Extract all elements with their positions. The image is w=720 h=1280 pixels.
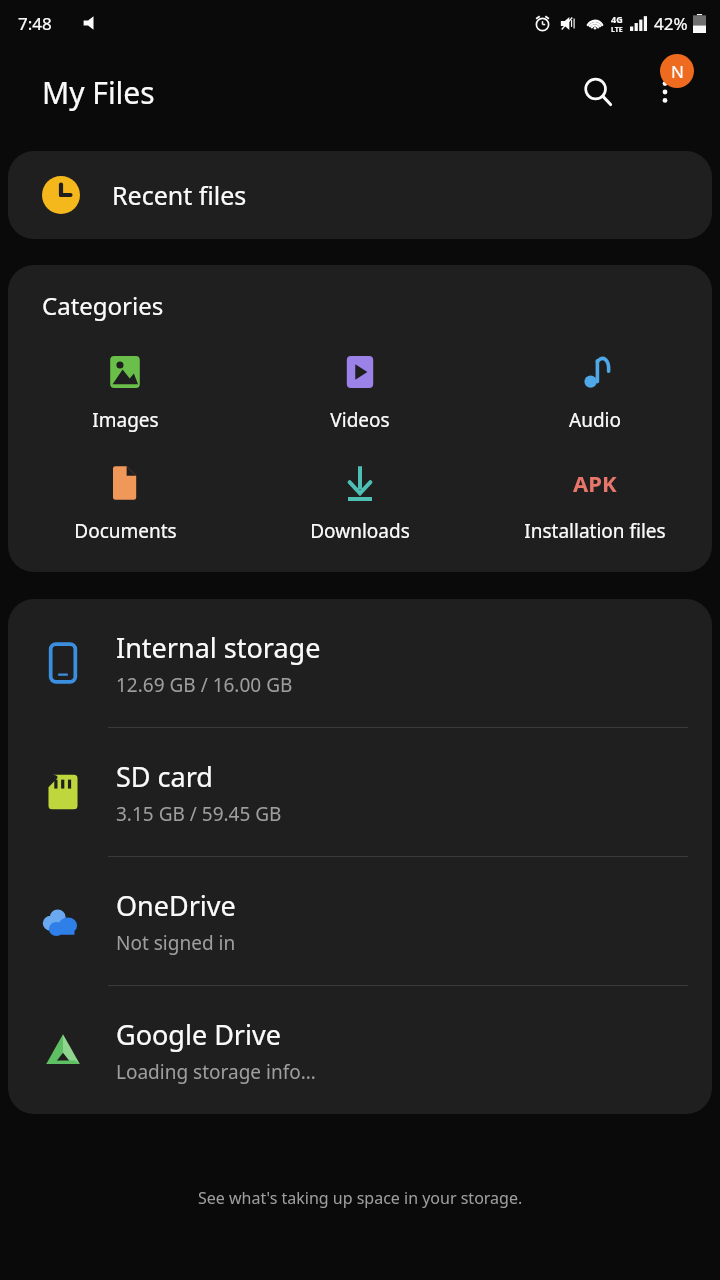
staticText: OneDrive: [116, 887, 236, 924]
button[interactable]: Videos: [242, 348, 477, 435]
staticText: Internal storage: [116, 629, 321, 666]
button[interactable]: Internal storage: [8, 599, 712, 727]
staticText: Loading storage info…: [116, 1059, 316, 1085]
button[interactable]: Account: [660, 54, 694, 88]
button[interactable]: Google Drive: [8, 986, 712, 1114]
staticText: Categories: [42, 289, 164, 322]
staticText: Videos: [330, 407, 390, 433]
button[interactable]: Images: [8, 348, 242, 435]
staticText: 42%: [654, 12, 688, 35]
staticText: Documents: [74, 518, 177, 544]
staticText: LTE: [611, 25, 623, 35]
staticText: Not signed in: [116, 930, 236, 956]
button[interactable]: Recent files: [8, 151, 712, 239]
staticText: SD card: [116, 758, 213, 795]
staticText: 4G: [611, 13, 623, 25]
staticText: 12.69 GB / 16.00 GB: [116, 672, 293, 698]
staticText: Images: [92, 407, 159, 433]
staticText: N: [671, 60, 684, 83]
staticText: Downloads: [310, 518, 410, 544]
staticText: See what's taking up space in your stora…: [198, 1187, 523, 1209]
button[interactable]: More options: [638, 65, 692, 119]
staticText: My Files: [42, 72, 155, 113]
button[interactable]: SD card: [8, 728, 712, 856]
button[interactable]: Documents: [8, 459, 242, 546]
button[interactable]: APK: [477, 459, 712, 546]
staticText: APK: [573, 468, 617, 498]
staticText: 3.15 GB / 59.45 GB: [116, 801, 282, 827]
button[interactable]: Audio: [477, 348, 712, 435]
staticText: 7:48: [18, 12, 52, 35]
staticText: Recent files: [112, 178, 247, 212]
button[interactable]: OneDrive: [8, 857, 712, 985]
staticText: Audio: [569, 407, 621, 433]
button[interactable]: Downloads: [242, 459, 477, 546]
button[interactable]: Search: [571, 65, 625, 119]
staticText: Google Drive: [116, 1016, 281, 1053]
staticText: Installation files: [524, 518, 666, 544]
